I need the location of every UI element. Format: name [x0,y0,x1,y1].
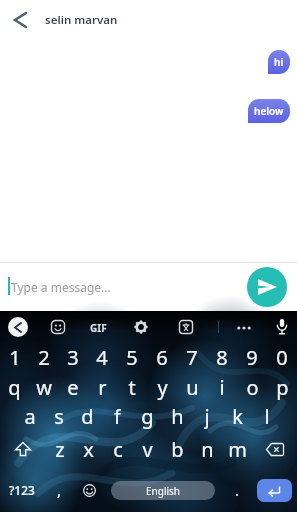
button[interactable]: 5 [117,344,147,368]
staticText: r [98,374,107,400]
button[interactable]: 8 [207,344,237,368]
staticText: 9 [246,344,258,368]
button[interactable]: m [222,436,252,462]
button[interactable] [252,436,297,462]
button[interactable]: n [192,436,222,462]
button[interactable]: g [132,403,162,429]
button[interactable] [247,267,287,307]
staticText: a [24,403,36,429]
button[interactable]: s [44,403,73,429]
button[interactable] [235,319,253,337]
button[interactable] [0,0,40,40]
button[interactable]: k [222,403,252,429]
staticText: 1 [9,344,21,368]
button[interactable]: 6 [147,344,177,368]
button[interactable]: 2 [29,344,58,368]
button[interactable]: GIF [90,321,107,335]
staticText: h [171,403,184,429]
button[interactable]: a [15,403,44,429]
button[interactable]: h [162,403,192,429]
staticText: p [276,374,289,400]
button[interactable] [178,319,194,335]
button[interactable]: b [162,436,192,462]
staticText: 4 [96,344,108,368]
button[interactable]: o [237,374,267,400]
staticText: k [232,403,243,429]
staticText: i [219,374,225,400]
staticText: selin marvan [45,12,118,28]
button[interactable]: x [74,436,103,462]
button[interactable]: y [147,374,177,400]
button[interactable]: 1 [0,344,29,368]
button[interactable] [8,317,28,337]
staticText: l [264,403,270,429]
button[interactable]: i [207,374,237,400]
button[interactable] [252,477,297,503]
staticText: n [201,436,214,462]
staticText: 6 [156,344,168,368]
staticText: o [246,374,259,400]
staticText: 3 [67,344,79,368]
button[interactable]: ?123 [0,477,44,503]
button[interactable]: d [73,403,102,429]
staticText: 7 [186,344,198,368]
button[interactable]: 9 [237,344,267,368]
staticText: . [235,480,240,500]
staticText: q [8,374,21,400]
button[interactable]: z [45,436,74,462]
staticText: , [57,480,62,500]
button[interactable]: . [222,477,252,503]
button[interactable]: l [252,403,282,429]
button[interactable]: f [102,403,132,429]
staticText: w [36,374,52,400]
staticText: y [157,374,168,400]
button[interactable]: c [103,436,132,462]
button[interactable] [74,477,104,503]
staticText: helow [254,104,284,118]
staticText: z [55,436,65,462]
staticText: English [146,484,181,498]
staticText: v [142,436,153,462]
button[interactable] [50,319,66,335]
button[interactable] [274,318,290,336]
staticText: d [81,403,94,429]
button[interactable]: v [132,436,162,462]
button[interactable]: 3 [58,344,87,368]
button[interactable]: j [192,403,222,429]
button[interactable]: 0 [267,344,297,368]
staticText: Type a message... [11,279,111,295]
button[interactable]: q [0,374,29,400]
button[interactable]: e [58,374,87,400]
staticText: x [83,436,94,462]
staticText: ?123 [9,482,35,498]
staticText: m [228,436,247,462]
staticText: b [171,436,184,462]
staticText: c [113,436,123,462]
button[interactable] [0,436,45,462]
staticText: u [186,374,199,400]
staticText: e [67,374,79,400]
staticText: g [141,403,154,429]
staticText: 8 [216,344,228,368]
button[interactable]: w [29,374,58,400]
button[interactable]: , [44,477,74,503]
staticText: t [128,374,136,400]
button[interactable]: English [111,477,215,503]
button[interactable]: r [87,374,117,400]
staticText: j [204,403,210,429]
button[interactable]: u [177,374,207,400]
button[interactable]: helow [248,99,290,123]
staticText: 2 [38,344,50,368]
button[interactable] [133,319,149,335]
staticText: hi [274,55,284,69]
button[interactable]: hi [268,50,290,74]
staticText: 0 [276,344,288,368]
staticText: 5 [126,344,138,368]
button[interactable]: 7 [177,344,207,368]
button[interactable]: p [267,374,297,400]
button[interactable]: t [117,374,147,400]
staticText: s [54,403,64,429]
staticText: f [114,403,121,429]
button[interactable]: 4 [87,344,117,368]
